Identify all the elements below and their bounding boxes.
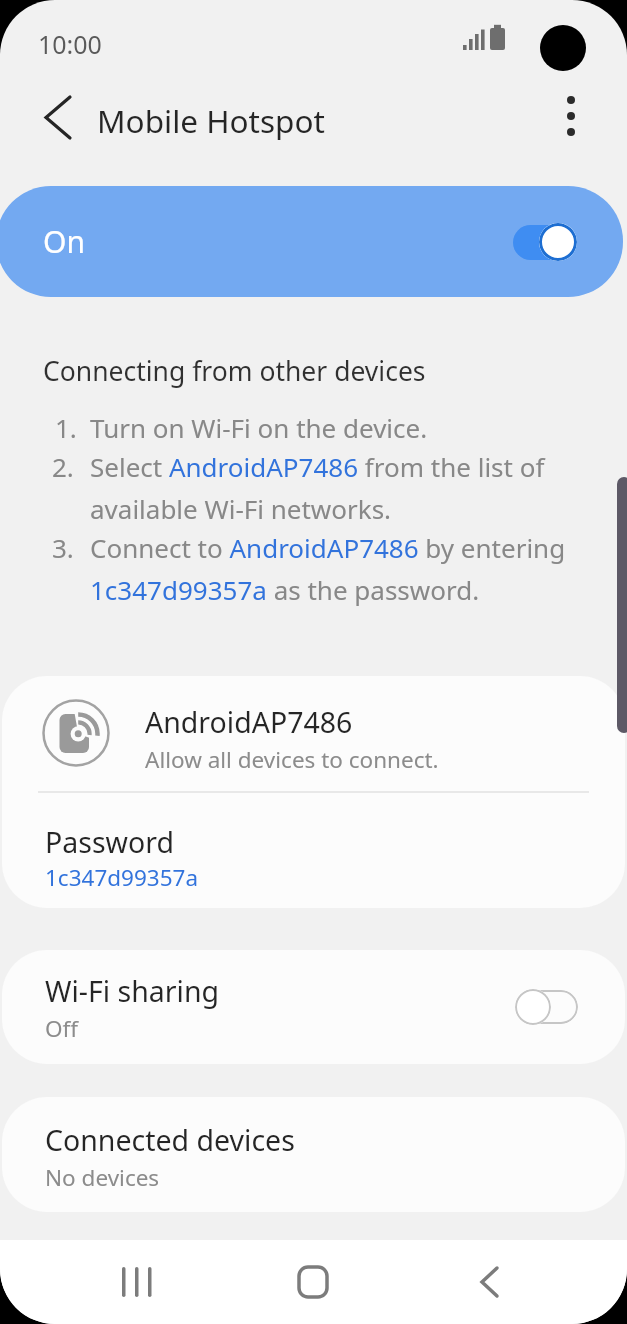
button[interactable] <box>30 90 84 144</box>
staticText: Mobile Hotspot <box>97 99 325 142</box>
staticText: Allow all devices to connect. <box>145 744 439 775</box>
button[interactable] <box>2 792 625 908</box>
staticText: Password <box>45 823 174 862</box>
staticText: No devices <box>45 1162 160 1193</box>
staticText: 1. <box>55 410 77 445</box>
staticText: Wi-Fi sharing <box>45 972 220 1011</box>
staticText: Connecting from other devices <box>43 353 426 389</box>
button[interactable]: Connected devices <box>2 1097 625 1212</box>
button[interactable]: Wi-Fi sharing <box>2 950 625 1064</box>
staticText: 1c347d99357a <box>45 862 199 893</box>
staticText: Connect to AndroidAP7486 by entering 1c3… <box>90 530 566 607</box>
button[interactable] <box>276 1245 350 1319</box>
button[interactable] <box>452 1245 526 1319</box>
staticText: Off <box>45 1013 79 1044</box>
staticText: Select AndroidAP7486 from the list of av… <box>90 449 545 526</box>
staticText: 3. <box>52 530 74 565</box>
staticText: 2. <box>52 449 74 484</box>
staticText: Connected devices <box>45 1121 295 1160</box>
button[interactable]: On <box>0 186 623 297</box>
button[interactable] <box>548 92 594 142</box>
staticText: 10:00 <box>38 27 102 61</box>
staticText: On <box>43 221 85 262</box>
staticText: AndroidAP7486 <box>145 703 353 742</box>
staticText: Turn on Wi-Fi on the device. <box>90 410 428 445</box>
button[interactable] <box>2 676 625 792</box>
button[interactable] <box>100 1245 174 1319</box>
